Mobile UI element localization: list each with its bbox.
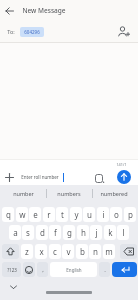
button[interactable] xyxy=(2,244,19,259)
staticText: b xyxy=(80,246,85,257)
button[interactable]: h xyxy=(77,225,89,240)
button[interactable]: number xyxy=(1,187,45,200)
button[interactable] xyxy=(23,262,35,277)
button[interactable]: d xyxy=(36,225,48,240)
button[interactable]: t xyxy=(56,207,68,222)
staticText: Enter roll number xyxy=(21,174,59,180)
staticText: . xyxy=(104,266,106,274)
button[interactable]: numbers xyxy=(47,187,91,200)
staticText: number xyxy=(13,190,34,197)
button[interactable]: r xyxy=(43,207,55,222)
button[interactable]: q xyxy=(2,207,14,222)
button[interactable]: z xyxy=(21,244,33,259)
button[interactable]: o xyxy=(110,207,122,222)
button[interactable]: , xyxy=(37,262,48,277)
button[interactable]: i xyxy=(97,207,109,222)
staticText: English xyxy=(66,267,82,273)
staticText: numbers xyxy=(57,190,81,197)
staticText: p xyxy=(128,209,133,220)
staticText: ?123 xyxy=(7,267,17,273)
staticText: v xyxy=(66,246,71,257)
button[interactable]: p xyxy=(124,207,136,222)
staticText: y xyxy=(74,209,79,220)
button[interactable]: c xyxy=(49,244,61,259)
staticText: e xyxy=(33,209,38,220)
staticText: j xyxy=(95,227,98,238)
button[interactable] xyxy=(112,262,137,277)
staticText: , xyxy=(42,266,44,274)
button[interactable]: b xyxy=(76,244,88,259)
button[interactable]: k xyxy=(104,225,116,240)
staticText: numbered xyxy=(100,190,128,197)
staticText: w xyxy=(19,209,26,220)
staticText: 604296 xyxy=(24,29,40,35)
button[interactable]: u xyxy=(83,207,95,222)
button[interactable] xyxy=(4,172,15,183)
button[interactable]: m xyxy=(103,244,115,259)
staticText: h xyxy=(81,227,86,238)
button[interactable]: w xyxy=(16,207,28,222)
button[interactable]: x xyxy=(35,244,47,259)
button[interactable]: g xyxy=(63,225,75,240)
staticText: d xyxy=(40,227,45,238)
button[interactable]: e xyxy=(29,207,41,222)
button[interactable]: a xyxy=(9,225,21,240)
button[interactable]: j xyxy=(90,225,102,240)
button[interactable]: y xyxy=(70,207,82,222)
staticText: To: xyxy=(7,28,15,35)
button[interactable]: numbered xyxy=(92,187,136,200)
button[interactable] xyxy=(116,24,131,39)
button[interactable] xyxy=(117,170,131,184)
button[interactable]: n xyxy=(89,244,101,259)
staticText: o xyxy=(114,209,119,220)
staticText: l xyxy=(122,227,125,238)
staticText: g xyxy=(67,227,72,238)
button[interactable] xyxy=(3,4,17,18)
staticText: r xyxy=(47,209,51,220)
staticText: i xyxy=(102,209,105,220)
staticText: n xyxy=(93,246,98,257)
button[interactable]: f xyxy=(49,225,61,240)
staticText: z xyxy=(25,246,29,257)
staticText: x xyxy=(39,246,44,257)
staticText: f xyxy=(54,227,57,238)
staticText: c xyxy=(53,246,57,257)
button[interactable]: Enter roll number xyxy=(17,167,108,188)
button[interactable]: s xyxy=(22,225,34,240)
staticText: q xyxy=(6,209,11,220)
staticText: k xyxy=(108,227,113,238)
button[interactable]: English xyxy=(50,262,97,277)
staticText: u xyxy=(87,209,92,220)
button[interactable]: 604296 xyxy=(20,27,44,37)
staticText: t xyxy=(61,209,64,220)
button[interactable] xyxy=(120,244,137,259)
staticText: New Message xyxy=(22,6,66,15)
button[interactable]: l xyxy=(117,225,129,240)
button[interactable]: v xyxy=(62,244,74,259)
staticText: s xyxy=(26,227,30,238)
staticText: m xyxy=(105,246,113,257)
button[interactable]: ?123 xyxy=(2,262,21,277)
staticText: a xyxy=(13,227,18,238)
button[interactable]: . xyxy=(99,262,110,277)
staticText: 141/1 xyxy=(116,162,127,167)
